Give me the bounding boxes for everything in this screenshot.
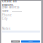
staticText: Phone bbox=[2, 13, 12, 17]
staticText: Email address bbox=[2, 5, 19, 9]
staticText: Name bbox=[2, 9, 9, 13]
button[interactable]: Cancel bbox=[11, 40, 20, 43]
button[interactable]: Save bbox=[21, 40, 40, 43]
staticText: Save bbox=[28, 41, 32, 42]
staticText: Cancel bbox=[13, 41, 18, 42]
staticText: City bbox=[2, 17, 7, 20]
staticText: Create an account bbox=[2, 0, 17, 6]
staticText: Notes bbox=[2, 27, 10, 30]
